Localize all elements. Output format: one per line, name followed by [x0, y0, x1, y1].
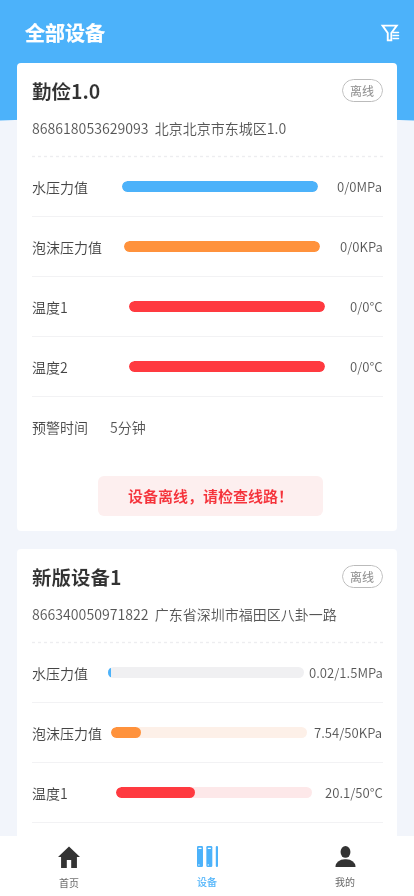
- staticText: 0/0MPa: [337, 177, 383, 196]
- staticText: 20.1/50°C: [325, 783, 383, 802]
- staticText: 868618053629093 北京北京市东城区1.0: [32, 118, 287, 138]
- button[interactable]: 离线: [342, 79, 383, 102]
- staticText: 全部设备: [25, 18, 105, 47]
- staticText: 866340050971822 广东省深圳市福田区八卦一路: [32, 604, 337, 624]
- button[interactable]: 首页: [0, 836, 138, 889]
- staticText: 5分钟: [110, 417, 146, 437]
- staticText: 21.3/50°C: [325, 843, 383, 862]
- button[interactable]: 勤俭1.0: [17, 63, 397, 531]
- staticText: 温度2: [32, 357, 68, 377]
- staticText: 温度1: [32, 297, 68, 317]
- staticText: 水压力值: [32, 177, 88, 197]
- staticText: 温度2: [32, 843, 68, 863]
- staticText: 设备: [197, 874, 217, 888]
- staticText: 设备离线，请检查线路！: [128, 485, 294, 507]
- staticText: 0/0°C: [350, 297, 383, 316]
- button[interactable]: Filter: [377, 20, 403, 46]
- staticText: 0/0°C: [350, 357, 383, 376]
- staticText: 7.54/50KPa: [314, 723, 383, 742]
- staticText: 首页: [59, 875, 79, 889]
- staticText: 0/0KPa: [340, 237, 383, 256]
- button[interactable]: 离线: [342, 565, 383, 588]
- button[interactable]: 设备: [138, 836, 276, 888]
- button[interactable]: 我的: [276, 836, 414, 888]
- staticText: 温度1: [32, 783, 68, 803]
- staticText: 我的: [335, 874, 355, 888]
- staticText: 泡沫压力值: [32, 723, 102, 743]
- staticText: 预警时间: [32, 417, 88, 437]
- staticText: 水压力值: [32, 663, 88, 683]
- staticText: 新版设备1: [32, 562, 122, 590]
- staticText: 离线: [350, 82, 375, 99]
- staticText: 离线: [350, 568, 375, 585]
- staticText: 泡沫压力值: [32, 237, 102, 257]
- staticText: 0.02/1.5MPa: [309, 663, 383, 682]
- button[interactable]: 新版设备1: [17, 549, 397, 882]
- staticText: 勤俭1.0: [32, 76, 101, 104]
